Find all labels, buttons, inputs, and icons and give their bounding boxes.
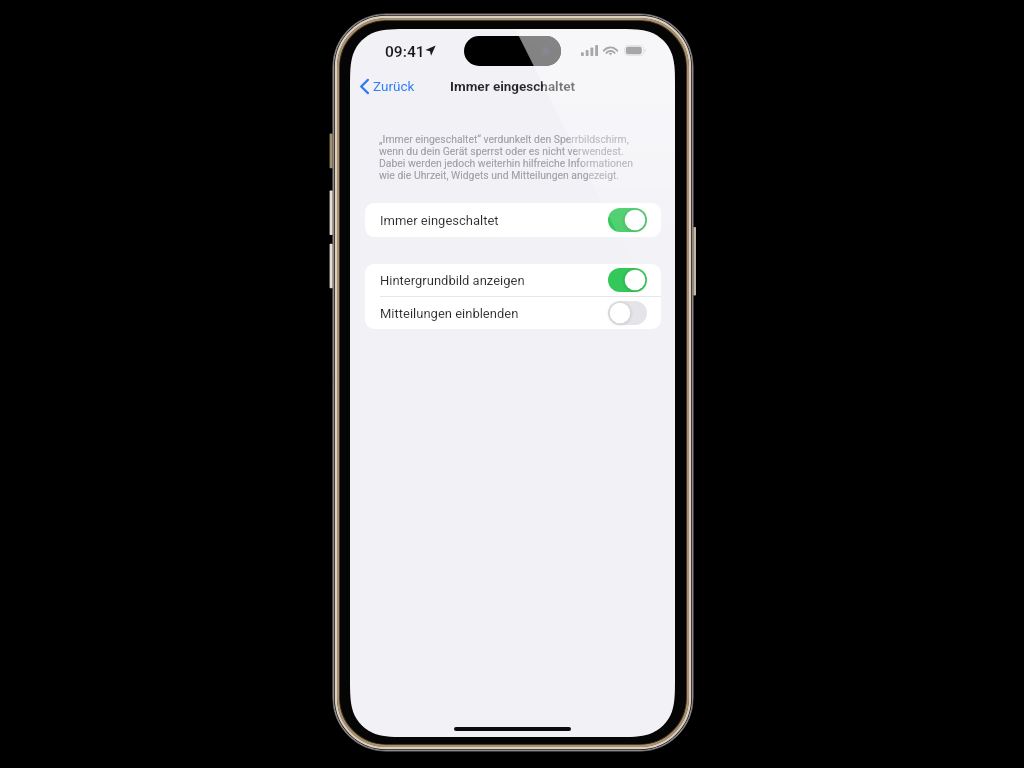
button[interactable]: Aus bbox=[608, 301, 647, 325]
button[interactable]: Immer eingeschaltet bbox=[365, 203, 661, 237]
button[interactable]: Zurück bbox=[354, 74, 421, 98]
button[interactable]: Hintergrundbild anzeigen bbox=[365, 264, 661, 296]
staticText: Mitteilungen einblenden bbox=[380, 306, 519, 321]
staticText: Immer eingeschaltet bbox=[450, 78, 576, 94]
button[interactable]: Ein bbox=[608, 208, 647, 232]
button[interactable]: Ein bbox=[608, 268, 647, 292]
staticText: Zurück bbox=[373, 78, 415, 94]
staticText: Hintergrundbild anzeigen bbox=[380, 273, 525, 288]
staticText: 09:41 bbox=[385, 43, 425, 61]
staticText: Immer eingeschaltet bbox=[380, 213, 499, 228]
staticText: „Immer eingeschaltet“ verdunkelt den Spe… bbox=[379, 133, 637, 181]
button[interactable]: Mitteilungen einblenden bbox=[365, 297, 661, 329]
